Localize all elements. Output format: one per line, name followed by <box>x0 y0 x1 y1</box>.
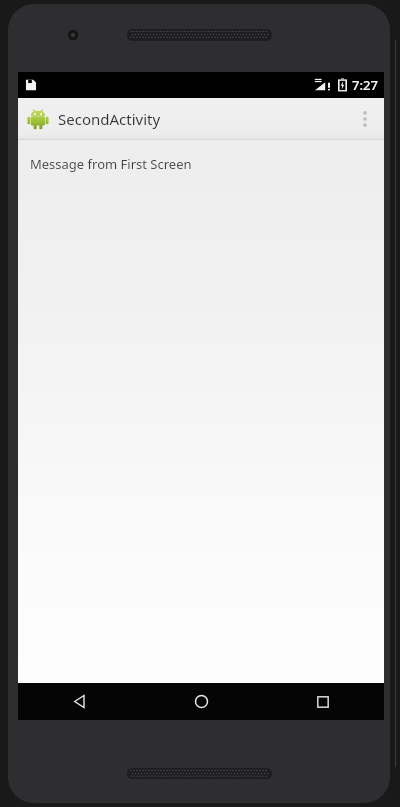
button[interactable]: Back <box>18 683 140 720</box>
staticText: Message from First Screen <box>30 155 192 173</box>
button[interactable]: Recent apps <box>262 683 384 720</box>
button[interactable]: Home <box>140 683 262 720</box>
staticText: 7:27 <box>352 76 378 94</box>
staticText: SecondActivity <box>58 109 161 129</box>
button[interactable]: More options <box>350 98 380 140</box>
